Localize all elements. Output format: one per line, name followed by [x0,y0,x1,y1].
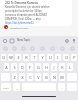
button[interactable]: M [59,73,65,81]
button[interactable]: D [19,63,25,71]
button[interactable]: C [27,73,33,81]
staticText: L [69,65,71,70]
button[interactable]: V [35,73,41,81]
button[interactable]: G [35,63,41,71]
staticText: Y [41,55,44,60]
staticText: R [25,55,28,60]
button[interactable]: J [51,63,57,71]
staticText: B [45,75,48,80]
button[interactable]: B [43,73,49,81]
staticText: W [9,55,13,60]
button[interactable]: W [8,54,13,61]
button[interactable]: X [19,73,25,81]
staticText: prototipleri bulunan bir 320px [5,9,42,13]
button[interactable]: A [4,63,9,71]
staticText: https://bit.ly/deneme32 [5,21,34,25]
button[interactable]: P [71,54,77,61]
button[interactable]: Tool 6 [47,44,57,53]
staticText: F [29,65,31,70]
staticText: I [57,55,59,60]
staticText: K [61,65,64,70]
staticText: E [17,55,20,60]
button[interactable]: Tool 8 [67,44,77,53]
button[interactable]: Voice input [70,37,77,44]
button[interactable]: H [43,63,49,71]
button[interactable]: E [15,54,21,61]
button[interactable]: Tool 5 [37,44,47,53]
staticText: DEMEYOK, Kod: 320ac — aksi. [5,17,42,21]
button[interactable]: Tool 2 [10,44,19,53]
staticText: J [53,65,55,70]
button[interactable]: O [63,54,69,61]
button[interactable]: L [67,63,73,71]
staticText: Karanlık/Deneme için sıkıntılı telefon [5,5,50,9]
button[interactable]: Tool 7 [57,44,67,53]
button[interactable]: ?123 [1,83,11,91]
staticText: V [37,75,40,80]
button[interactable]: Z [12,73,17,81]
button[interactable]: Tool 4 [28,44,37,53]
button[interactable]: . [58,83,65,91]
staticText: P [73,55,76,60]
staticText: S [13,65,16,70]
button[interactable]: Tool 3 [19,44,28,53]
button[interactable]: Q [1,54,6,61]
staticText: X [21,75,24,80]
staticText: Q [2,55,5,60]
staticText: 232 Tr. Deneme Konusu [5,1,38,5]
staticText: C [29,75,32,80]
button[interactable]: I [55,54,61,61]
button[interactable]: Y [39,54,45,61]
staticText: New Topic [17,38,31,42]
staticText: Mesajınızı yazın [10,26,29,29]
button[interactable]: Stickers [8,37,15,44]
staticText: A [5,65,8,70]
staticText: . [61,85,63,90]
staticText: M [60,75,64,80]
button[interactable]: S [11,63,17,71]
button[interactable]: , [13,83,20,91]
button[interactable]: K [59,63,65,71]
staticText: T [33,55,36,60]
staticText: , [16,85,18,90]
button[interactable]: Emoji [1,37,8,44]
staticText: H [45,65,48,70]
button[interactable]: Tool 1 [1,44,10,53]
staticText: O [65,55,68,60]
button[interactable]: U [47,54,53,61]
staticText: G [37,65,40,70]
staticText: sorunsuz ekranda yeterli ALICIMIZ [5,13,47,17]
staticText: U [49,55,52,60]
staticText: D [21,65,24,70]
staticText: N [53,75,56,80]
staticText: ?123 [3,86,9,89]
button[interactable]: N [51,73,57,81]
button[interactable]: F [27,63,33,71]
button[interactable]: T [31,54,37,61]
button[interactable]: Settings [63,37,70,44]
staticText: Z [13,75,16,80]
button[interactable]: R [23,54,29,61]
